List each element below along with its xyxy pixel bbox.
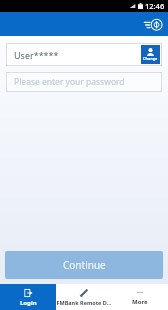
staticText: Please enter your password [14,76,125,88]
staticText: User***** [14,49,59,61]
button[interactable]: Please enter your password [6,72,162,92]
button[interactable]: Change user [141,45,160,64]
staticText: Change [143,56,158,61]
button[interactable]: Continue [5,251,163,279]
staticText: More [132,298,148,306]
button[interactable]: User***** [6,43,162,66]
staticText: 12:46 [145,1,165,11]
button[interactable]: FMBank Remote De... [56,284,112,310]
staticText: Login [20,299,37,307]
button[interactable]: More [112,284,168,310]
staticText: Continue [63,258,106,272]
button[interactable]: Payments [143,14,163,34]
staticText: FMBank Remote De... [56,299,112,306]
button[interactable]: Login [0,284,56,310]
